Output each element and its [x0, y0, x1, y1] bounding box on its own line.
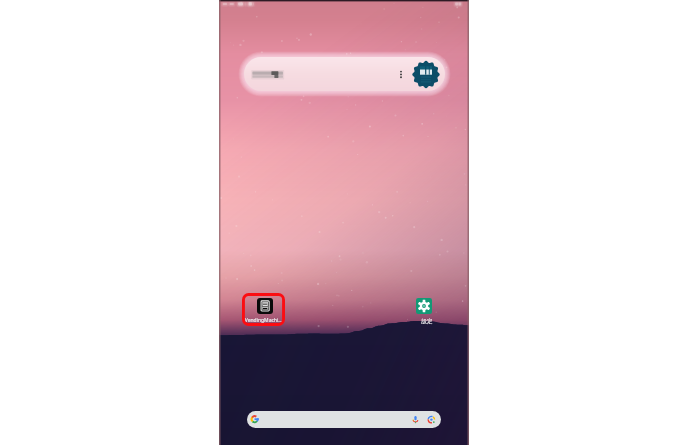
staticText: 設定: [407, 318, 447, 325]
button[interactable]: VendingMachi...: [242, 293, 285, 326]
button[interactable]: Open app: [411, 59, 442, 90]
button[interactable]: More options: [396, 66, 406, 82]
button[interactable]: 設定: [407, 296, 447, 325]
button[interactable]: [244, 57, 445, 91]
button[interactable]: [247, 411, 441, 428]
staticText: VendingMachi...: [242, 317, 285, 324]
